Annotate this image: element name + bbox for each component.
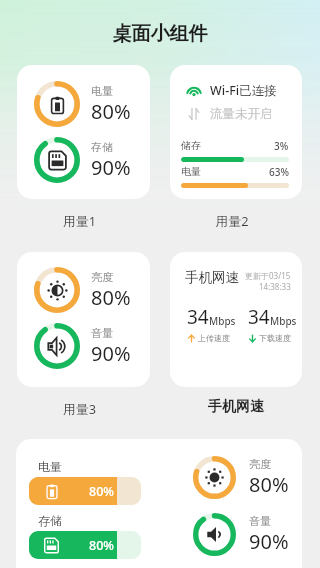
staticText: Mbps xyxy=(270,314,297,328)
staticText: 储存 xyxy=(181,139,201,152)
staticText: 手机网速 xyxy=(185,269,239,286)
button[interactable]: Wi-Fi已连接 xyxy=(170,65,302,199)
staticText: 更新于03/15 xyxy=(245,270,291,281)
staticText: 上传速度 xyxy=(198,333,230,343)
staticText: 80% xyxy=(91,284,131,311)
staticText: 存储 xyxy=(91,140,113,154)
staticText: 下载速度 xyxy=(259,333,291,343)
staticText: 手机网速 xyxy=(170,398,302,416)
staticText: 流量未开启 xyxy=(210,106,273,122)
staticText: 90% xyxy=(249,528,289,555)
staticText: 音量 xyxy=(249,514,271,528)
staticText: 音量 xyxy=(91,326,113,340)
staticText: 电量 xyxy=(181,165,201,178)
staticText: 90% xyxy=(91,154,131,181)
staticText: 用量1 xyxy=(13,212,146,229)
staticText: 80% xyxy=(89,483,114,500)
staticText: Wi-Fi已连接 xyxy=(210,82,277,98)
staticText: 80% xyxy=(89,537,114,554)
staticText: Mbps xyxy=(209,314,236,328)
staticText: 用量3 xyxy=(13,400,146,417)
staticText: 63% xyxy=(269,165,289,179)
staticText: 存储 xyxy=(38,513,62,528)
staticText: 电量 xyxy=(38,459,62,474)
staticText: 90% xyxy=(91,340,131,367)
staticText: 80% xyxy=(249,471,289,498)
staticText: 80% xyxy=(91,98,131,125)
staticText: 亮度 xyxy=(91,270,113,284)
staticText: 3% xyxy=(274,139,289,153)
staticText: 电量 xyxy=(91,84,113,98)
button[interactable]: 电量 xyxy=(16,439,302,568)
button[interactable]: 电量 xyxy=(17,65,150,199)
staticText: 桌面小组件 xyxy=(0,22,320,46)
staticText: 14:38:33 xyxy=(259,281,291,292)
button[interactable]: 手机网速 xyxy=(170,252,302,387)
staticText: 用量2 xyxy=(166,212,298,229)
staticText: 亮度 xyxy=(249,457,271,471)
staticText: 34 xyxy=(248,304,270,330)
button[interactable]: 亮度 xyxy=(17,252,150,387)
staticText: 34 xyxy=(187,304,209,330)
